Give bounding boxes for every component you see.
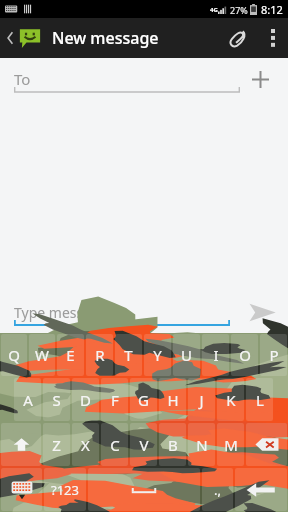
staticText: X: [81, 435, 90, 455]
button[interactable]: R: [86, 334, 113, 376]
staticText: P: [269, 345, 279, 365]
staticText: M: [224, 435, 238, 455]
button[interactable]: Enter: [235, 468, 287, 511]
button[interactable]: .,: [202, 468, 233, 511]
button[interactable]: A: [14, 378, 41, 421]
button[interactable]: U: [173, 334, 200, 376]
button[interactable]: P: [260, 334, 287, 376]
button[interactable]: W: [29, 334, 55, 376]
button[interactable]: B: [159, 423, 186, 466]
button[interactable]: H: [159, 378, 186, 421]
button[interactable]: Attach: [218, 18, 258, 58]
button[interactable]: More options: [258, 18, 288, 58]
staticText: D: [80, 390, 91, 410]
button[interactable]: S: [43, 378, 70, 421]
button[interactable]: Q: [1, 334, 27, 376]
staticText: W: [35, 345, 49, 365]
button[interactable]: N: [188, 423, 215, 466]
staticText: .,: [214, 481, 221, 499]
staticText: 27%: [230, 4, 248, 16]
button[interactable]: Space: [88, 468, 200, 511]
staticText: F: [111, 390, 119, 410]
button[interactable]: Y: [144, 334, 171, 376]
button[interactable]: ?123: [44, 468, 86, 511]
staticText: V: [139, 435, 149, 455]
button[interactable]: Backspace: [246, 423, 287, 466]
staticText: G: [138, 390, 149, 410]
staticText: K: [226, 390, 236, 410]
button[interactable]: V: [130, 423, 157, 466]
button[interactable]: Shift: [1, 423, 41, 466]
staticText: C: [110, 435, 120, 455]
button[interactable]: Type message: [14, 297, 230, 327]
staticText: B: [168, 435, 178, 455]
staticText: H: [167, 390, 179, 410]
button[interactable]: L: [246, 378, 273, 421]
button[interactable]: F: [101, 378, 128, 421]
button[interactable]: To: [14, 64, 240, 94]
staticText: To: [14, 69, 31, 89]
staticText: N: [196, 435, 208, 455]
button[interactable]: D: [72, 378, 99, 421]
button[interactable]: M: [217, 423, 244, 466]
staticText: J: [199, 390, 204, 410]
staticText: Y: [153, 345, 162, 365]
staticText: New message: [52, 27, 159, 49]
staticText: Type message: [14, 303, 108, 322]
button[interactable]: C: [101, 423, 128, 466]
staticText: L: [256, 390, 264, 410]
button[interactable]: Z: [43, 423, 70, 466]
staticText: I: [213, 345, 219, 365]
button[interactable]: X: [72, 423, 99, 466]
button[interactable]: O: [231, 334, 258, 376]
button[interactable]: Back: [0, 18, 43, 58]
button[interactable]: Send: [240, 291, 284, 333]
button[interactable]: T: [115, 334, 142, 376]
staticText: 4G: [210, 6, 218, 14]
staticText: A: [23, 390, 33, 410]
button[interactable]: I: [202, 334, 229, 376]
staticText: Q: [8, 345, 20, 365]
staticText: U: [181, 345, 192, 365]
staticText: O: [239, 345, 251, 365]
button[interactable]: Add recipient: [240, 59, 280, 99]
staticText: Z: [52, 435, 61, 455]
button[interactable]: E: [57, 334, 84, 376]
staticText: R: [95, 345, 105, 365]
staticText: ?123: [51, 481, 79, 499]
button[interactable]: G: [130, 378, 157, 421]
staticText: E: [66, 345, 75, 365]
button[interactable]: Switch keyboard: [1, 468, 42, 511]
staticText: S: [52, 390, 61, 410]
staticText: 8:12: [261, 2, 283, 17]
button[interactable]: J: [188, 378, 215, 421]
staticText: T: [124, 345, 133, 365]
button[interactable]: K: [217, 378, 244, 421]
